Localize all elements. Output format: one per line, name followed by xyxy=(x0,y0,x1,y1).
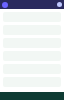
button[interactable]: Share xyxy=(57,2,62,7)
button[interactable]: Profile xyxy=(2,2,8,8)
